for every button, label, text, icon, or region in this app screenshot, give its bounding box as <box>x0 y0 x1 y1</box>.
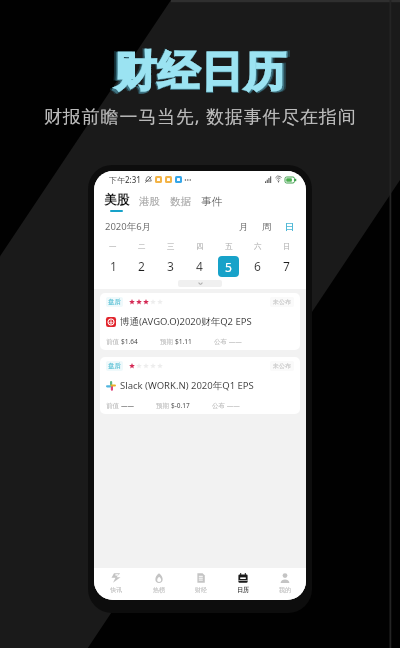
staticText: $1.64 <box>121 337 138 346</box>
staticText: 下午2:31 <box>109 174 141 185</box>
button[interactable]: 5 <box>214 255 243 277</box>
staticText: 2020年6月 <box>105 220 152 233</box>
staticText: 博通(AVGO.O)2020财年Q2 EPS <box>120 315 252 328</box>
staticText: 快讯 <box>110 586 122 594</box>
button[interactable]: 数据 <box>170 195 191 208</box>
staticText: 热榜 <box>153 586 165 594</box>
staticText: 7 <box>283 258 290 274</box>
staticText: $-0.17 <box>171 401 190 410</box>
button[interactable]: 周 <box>262 221 272 233</box>
button[interactable]: 热榜 <box>137 572 180 594</box>
staticText: 我的 <box>279 586 291 594</box>
button[interactable]: 美股 <box>104 192 129 212</box>
button[interactable]: 我的 <box>264 572 306 594</box>
staticText: 财经日历 <box>110 45 290 100</box>
staticText: 四 <box>196 242 204 251</box>
staticText: 财经日历 <box>112 46 288 100</box>
button[interactable]: 港股 <box>139 195 160 208</box>
staticText: 4 <box>196 258 203 274</box>
staticText: Slack (WORK.N) 2020年Q1 EPS <box>120 379 254 392</box>
staticText: 5 <box>225 259 232 275</box>
staticText: 六 <box>254 242 262 251</box>
button[interactable]: 盘后 <box>100 293 300 350</box>
button[interactable]: Expand calendar <box>178 280 222 287</box>
staticText: 盘后 <box>108 362 121 370</box>
button[interactable]: 日历 <box>222 572 264 594</box>
staticText: 日 <box>283 242 291 251</box>
staticText: 预期 <box>156 401 171 410</box>
staticText: 2 <box>138 258 145 274</box>
staticText: 未公布 <box>273 298 291 306</box>
staticText: 五 <box>225 242 233 251</box>
staticText: 前值 <box>106 401 121 410</box>
staticText: 盘后 <box>108 298 121 306</box>
staticText: —— <box>121 401 134 410</box>
staticText: 财经日历 <box>114 46 286 99</box>
button[interactable]: 月 <box>239 221 249 233</box>
staticText: 日历 <box>237 586 249 594</box>
button[interactable]: 日 <box>285 221 295 233</box>
staticText: 1 <box>110 258 117 274</box>
button[interactable]: 财经 <box>180 572 222 594</box>
button[interactable]: 6 <box>243 255 272 277</box>
staticText: 财报前瞻一马当先, 数据事件尽在指间 <box>44 104 357 129</box>
button[interactable]: 事件 <box>201 195 222 208</box>
staticText: $1.11 <box>175 337 192 346</box>
button[interactable]: 盘后 <box>100 357 300 414</box>
staticText: 美股 <box>104 192 129 208</box>
button[interactable]: 1 <box>99 255 127 277</box>
button[interactable]: 2 <box>127 255 156 277</box>
staticText: 一 <box>109 242 117 251</box>
staticText: 3 <box>167 258 174 274</box>
staticText: 二 <box>138 242 146 251</box>
staticText: 财经 <box>195 586 207 594</box>
staticText: 公布 —— <box>214 337 242 346</box>
staticText: 6 <box>254 258 261 274</box>
button[interactable]: 快讯 <box>94 572 137 594</box>
button[interactable]: 4 <box>185 255 214 277</box>
staticText: 前值 <box>106 337 121 346</box>
button[interactable]: 3 <box>156 255 185 277</box>
staticText: 三 <box>167 242 175 251</box>
button[interactable]: 7 <box>272 255 301 277</box>
staticText: 预期 <box>160 337 175 346</box>
staticText: 公布 —— <box>212 401 240 410</box>
staticText: 未公布 <box>273 362 291 370</box>
